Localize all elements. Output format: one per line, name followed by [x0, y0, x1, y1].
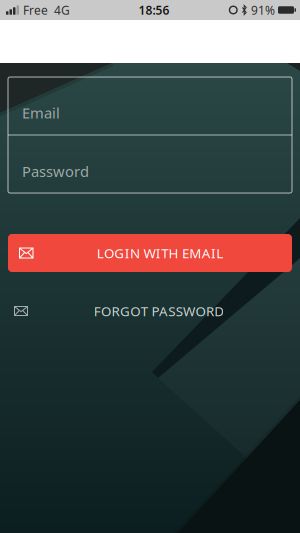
staticText: Free — [23, 2, 48, 18]
staticText: FORGOT PASSWORD — [94, 302, 224, 320]
button[interactable]: Password — [8, 135, 292, 193]
staticText: Password — [22, 161, 89, 181]
staticText: 4G — [54, 2, 70, 18]
button[interactable]: Email — [8, 77, 292, 134]
staticText: LOGIN WITH EMAIL — [97, 244, 223, 262]
staticText: 18:56 — [138, 2, 169, 18]
button[interactable]: LOGIN WITH EMAIL — [8, 234, 292, 272]
staticText: 91% — [251, 2, 275, 18]
button[interactable]: FORGOT PASSWORD — [0, 301, 300, 321]
staticText: Email — [22, 103, 60, 122]
